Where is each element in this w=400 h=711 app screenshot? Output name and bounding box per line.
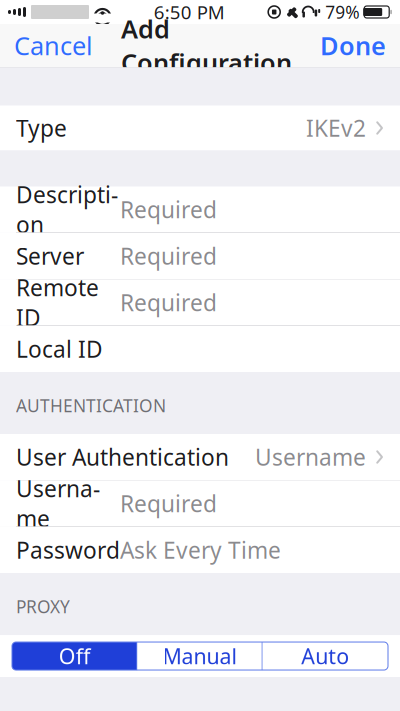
staticText: Remote ID (16, 272, 99, 333)
staticText: Manual (162, 642, 237, 670)
staticText: AUTHENTICATION (16, 394, 166, 417)
staticText: 6:50 PM (154, 0, 225, 24)
button[interactable]: Cancel (0, 24, 107, 66)
staticText: Done (320, 29, 386, 62)
button[interactable]: Server (0, 233, 400, 279)
button[interactable]: Description (0, 186, 400, 232)
staticText: 79% (325, 0, 359, 23)
button[interactable]: Type (0, 105, 400, 150)
staticText: Auto (301, 642, 349, 670)
button[interactable]: Off (12, 642, 137, 670)
staticText: Username (16, 473, 100, 534)
staticText: Server (16, 241, 84, 271)
button[interactable]: Local ID (0, 326, 400, 372)
staticText: Username (255, 442, 366, 472)
button[interactable]: Password (0, 527, 400, 573)
button[interactable]: Manual (137, 642, 263, 670)
staticText: Description (16, 179, 118, 240)
button[interactable]: Remote ID (0, 279, 400, 325)
staticText: Password (16, 535, 120, 565)
staticText: Type (16, 113, 67, 143)
staticText: User Authentication (16, 442, 229, 472)
staticText: Off (59, 642, 91, 670)
staticText: Required (120, 287, 217, 317)
staticText: IKEv2 (306, 113, 366, 143)
staticText: Cancel (14, 29, 93, 62)
staticText: Add Configuration (121, 12, 292, 79)
button[interactable]: Username (0, 480, 400, 526)
staticText: Required (120, 194, 217, 224)
staticText: Ask Every Time (120, 535, 281, 565)
staticText: PROXY (16, 595, 70, 618)
button[interactable]: User Authentication (0, 434, 400, 480)
staticText: Required (120, 488, 217, 519)
button[interactable]: Done (306, 24, 400, 66)
staticText: Required (120, 241, 217, 271)
button[interactable]: Auto (263, 642, 388, 670)
staticText: Local ID (16, 334, 103, 364)
